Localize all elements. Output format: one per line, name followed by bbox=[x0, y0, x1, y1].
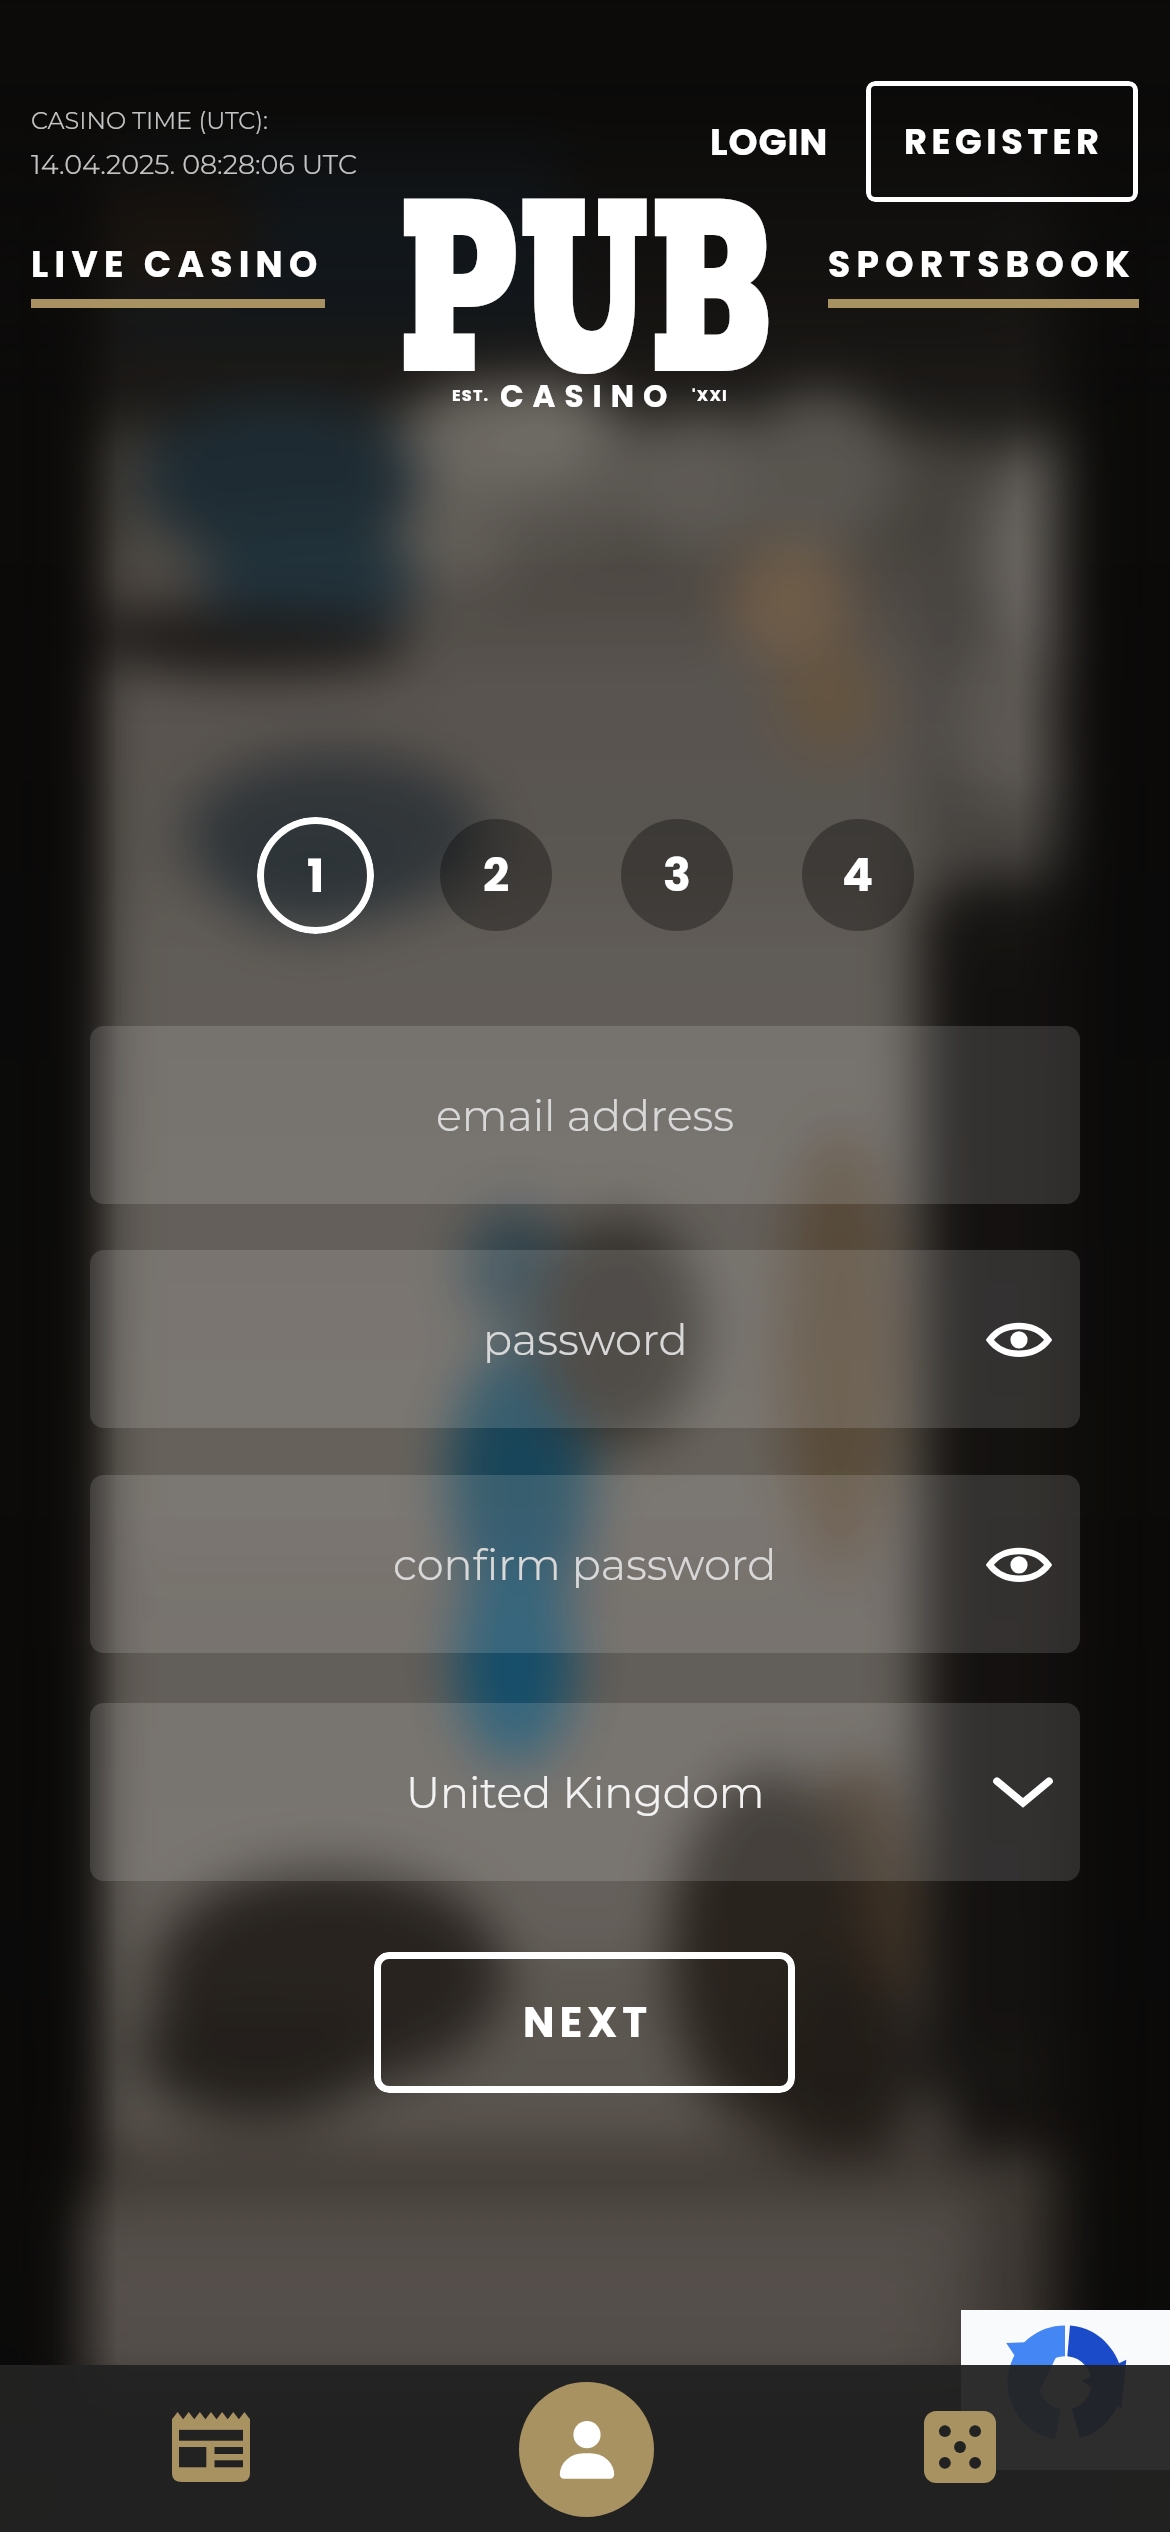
staticText: PUB bbox=[399, 116, 774, 396]
other: Show password bbox=[988, 1542, 1050, 1586]
staticText: CASINO bbox=[500, 374, 677, 417]
button[interactable]: SPORTSBOOK bbox=[828, 238, 1140, 310]
button[interactable]: 2 bbox=[440, 819, 552, 931]
button[interactable]: password bbox=[90, 1250, 1080, 1428]
staticText: 4 bbox=[842, 843, 874, 907]
staticText: LIVE CASINO bbox=[31, 239, 324, 289]
button[interactable]: 1 bbox=[257, 817, 374, 934]
button[interactable]: News bbox=[151, 2387, 271, 2507]
button[interactable]: email address bbox=[90, 1026, 1080, 1204]
staticText: 3 bbox=[663, 843, 691, 907]
staticText: email address bbox=[436, 1089, 734, 1141]
staticText: 'XXI bbox=[692, 384, 728, 406]
button[interactable]: 3 bbox=[621, 819, 733, 931]
button[interactable]: United Kingdom bbox=[90, 1703, 1080, 1881]
staticText: 1 bbox=[307, 844, 325, 908]
button[interactable]: Account bbox=[519, 2382, 654, 2517]
other: Select country bbox=[994, 1775, 1052, 1809]
staticText: United Kingdom bbox=[406, 1766, 765, 1818]
staticText: SPORTSBOOK bbox=[828, 239, 1137, 289]
staticText: LOGIN bbox=[710, 116, 829, 168]
staticText: CASINO TIME (UTC): bbox=[31, 106, 269, 135]
other: Show password bbox=[988, 1317, 1050, 1361]
button[interactable]: confirm password bbox=[90, 1475, 1080, 1653]
staticText: NEXT bbox=[523, 1993, 653, 2052]
button[interactable]: NEXT bbox=[374, 1952, 795, 2093]
button[interactable]: Games bbox=[900, 2387, 1020, 2507]
button[interactable]: LOGIN bbox=[697, 104, 842, 180]
staticText: 14.04.2025. 08:28:06 UTC bbox=[31, 148, 357, 181]
staticText: EST. bbox=[452, 384, 490, 406]
button[interactable]: 4 bbox=[802, 819, 914, 931]
staticText: password bbox=[483, 1313, 688, 1365]
staticText: REGISTER bbox=[904, 117, 1104, 166]
button[interactable]: LIVE CASINO bbox=[31, 238, 327, 310]
button[interactable]: REGISTER bbox=[866, 81, 1138, 202]
staticText: confirm password bbox=[393, 1538, 777, 1590]
staticText: 2 bbox=[483, 843, 510, 907]
